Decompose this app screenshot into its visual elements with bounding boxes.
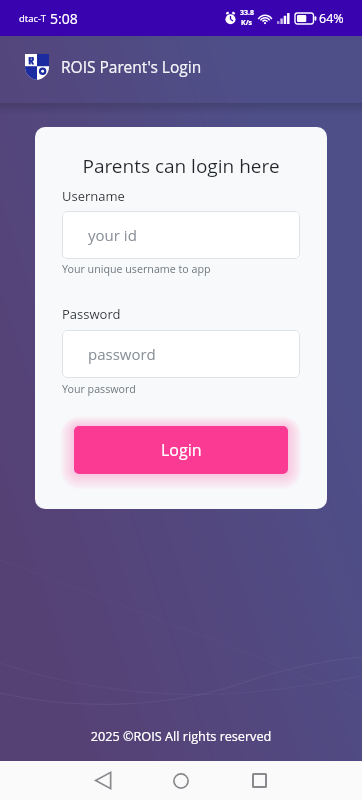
staticText: password bbox=[88, 344, 156, 364]
staticText: 2025 ©ROIS All rights reserved bbox=[0, 727, 362, 744]
button[interactable]: Login bbox=[74, 426, 288, 474]
staticText: Login bbox=[161, 439, 202, 461]
staticText: Password bbox=[62, 305, 121, 323]
button[interactable]: your id bbox=[62, 211, 300, 259]
staticText: Your unique username to app bbox=[62, 262, 211, 277]
staticText: ROIS Parent's Login bbox=[61, 56, 202, 77]
staticText: 33.8 bbox=[240, 8, 254, 18]
staticText: 5:08 bbox=[50, 9, 78, 28]
staticText: Your password bbox=[62, 382, 136, 397]
staticText: Parents can login here bbox=[35, 153, 327, 179]
button[interactable]: password bbox=[62, 330, 300, 378]
staticText: Username bbox=[62, 187, 125, 205]
staticText: 64% bbox=[319, 10, 344, 27]
staticText: K/s bbox=[241, 18, 253, 28]
staticText: your id bbox=[88, 225, 137, 245]
button[interactable]: Home bbox=[161, 761, 201, 800]
button[interactable]: Recents bbox=[239, 761, 279, 800]
staticText: dtac-T bbox=[19, 12, 46, 25]
button[interactable]: Back bbox=[83, 761, 123, 800]
